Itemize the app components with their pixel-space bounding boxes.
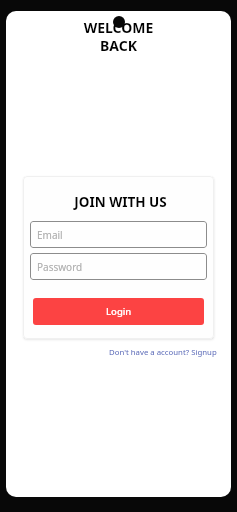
button[interactable]: Login — [33, 298, 204, 325]
staticText: WELCOME BACK — [6, 18, 231, 56]
button[interactable]: Don't have a account? Signup — [109, 347, 217, 358]
staticText: JOIN WITH US — [32, 193, 209, 211]
button[interactable]: Email — [30, 221, 207, 248]
staticText: Email — [37, 228, 63, 242]
button[interactable]: Password — [30, 253, 207, 280]
staticText: Login — [106, 305, 132, 318]
staticText: Password — [37, 260, 83, 274]
